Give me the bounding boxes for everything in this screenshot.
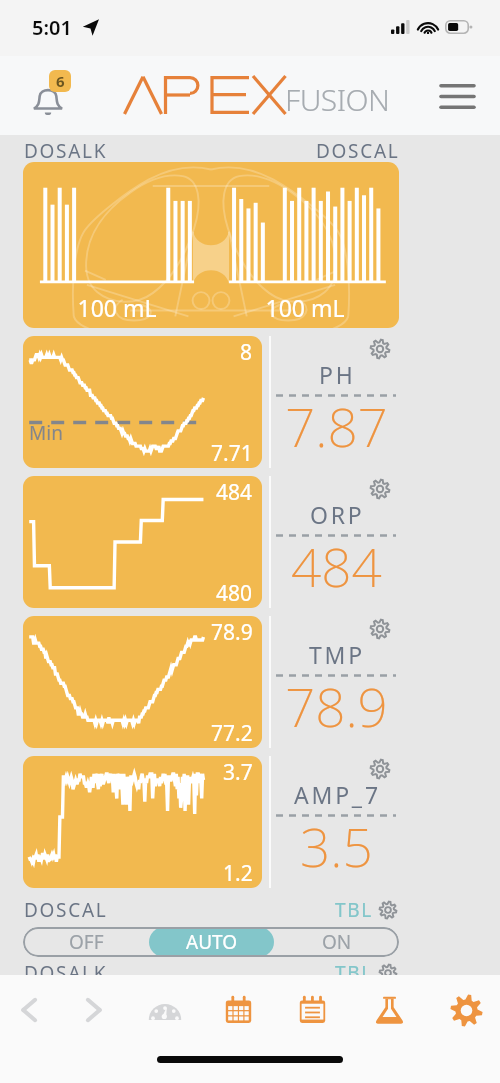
button[interactable]: Tasks [287, 975, 337, 1045]
staticText: ON [322, 929, 352, 955]
button[interactable]: AUTO [149, 990, 274, 1020]
button[interactable]: Calendar [213, 975, 263, 1045]
button[interactable]: 3.7 [23, 756, 262, 888]
staticText: AUTO [186, 992, 238, 1018]
button[interactable]: 78.9 [23, 616, 262, 748]
staticText: FUSION [285, 79, 390, 120]
staticText: 8 [240, 338, 253, 367]
staticText: AUTO [186, 929, 238, 955]
staticText: 77.2 [211, 719, 253, 748]
button[interactable]: Menu [431, 70, 483, 122]
button[interactable]: Lab [364, 975, 414, 1045]
button[interactable]: Forward [69, 975, 119, 1045]
staticText: TBL [335, 960, 373, 986]
staticText: 484 [216, 478, 253, 507]
staticText: 78.9 [285, 670, 388, 742]
button[interactable]: 100 mL [23, 162, 399, 328]
staticText: 6 [56, 71, 65, 91]
button[interactable]: OFF [23, 990, 149, 1020]
staticText: 7.87 [285, 390, 388, 462]
staticText: 100 mL [211, 292, 399, 323]
staticText: PH [319, 359, 356, 390]
button[interactable]: ON [274, 990, 399, 1020]
button[interactable]: Dashboard [140, 975, 190, 1045]
button[interactable]: ORP settings [367, 476, 393, 502]
staticText: 3.7 [223, 758, 253, 787]
staticText: DOSALK [24, 960, 108, 986]
staticText: TBL [335, 897, 373, 923]
button[interactable]: OFF [23, 927, 149, 957]
staticText: AMP_7 [294, 779, 381, 810]
button[interactable]: ON [274, 927, 399, 957]
button[interactable]: 8 [23, 336, 262, 468]
staticText: 3.5 [300, 810, 373, 882]
button[interactable]: Alerts [22, 70, 74, 122]
button[interactable]: DOSALK settings [377, 962, 399, 984]
staticText: ORP [310, 499, 365, 530]
button[interactable]: DOSCAL settings [377, 899, 399, 921]
staticText: 1.2 [223, 859, 253, 888]
button[interactable]: AUTO [149, 927, 274, 957]
staticText: 5:01 [32, 14, 72, 41]
staticText: DOSCAL [316, 138, 400, 164]
button[interactable]: 484 [23, 476, 262, 608]
button[interactable]: Settings [441, 975, 491, 1045]
staticText: DOSALK [24, 138, 108, 164]
button[interactable]: TMP settings [367, 616, 393, 642]
staticText: 100 mL [23, 292, 211, 323]
staticText: ON [322, 992, 352, 1018]
staticText: TMP [309, 639, 365, 670]
staticText: 7.71 [211, 439, 253, 468]
button[interactable]: PH settings [367, 336, 393, 362]
staticText: DOSCAL [24, 897, 108, 923]
staticText: Min [29, 420, 63, 446]
staticText: OFF [69, 929, 104, 955]
button[interactable]: AMP_7 settings [367, 756, 393, 782]
button[interactable]: Back [4, 975, 54, 1045]
staticText: 484 [291, 530, 382, 602]
staticText: OFF [69, 992, 104, 1018]
staticText: 480 [216, 579, 253, 608]
staticText: 78.9 [211, 618, 253, 647]
